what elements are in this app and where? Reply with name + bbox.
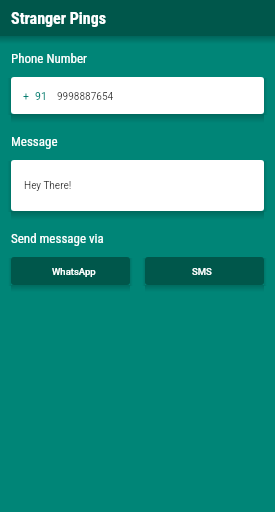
button[interactable]: SMS — [145, 257, 264, 285]
staticText: Message — [11, 134, 58, 149]
staticText: Phone Number — [11, 51, 87, 66]
staticText: Stranger Pings — [11, 9, 107, 28]
staticText: SMS — [192, 266, 212, 277]
staticText: + — [23, 90, 29, 102]
button[interactable]: Message input — [11, 160, 264, 211]
staticText: Send message via — [11, 231, 104, 246]
staticText: 9998887654 — [57, 91, 114, 103]
staticText: Hey There! — [24, 180, 72, 192]
button[interactable]: WhatsApp — [11, 257, 130, 285]
staticText: 91 — [35, 90, 47, 102]
button[interactable]: Phone number input — [11, 77, 264, 114]
staticText: WhatsApp — [52, 266, 96, 277]
